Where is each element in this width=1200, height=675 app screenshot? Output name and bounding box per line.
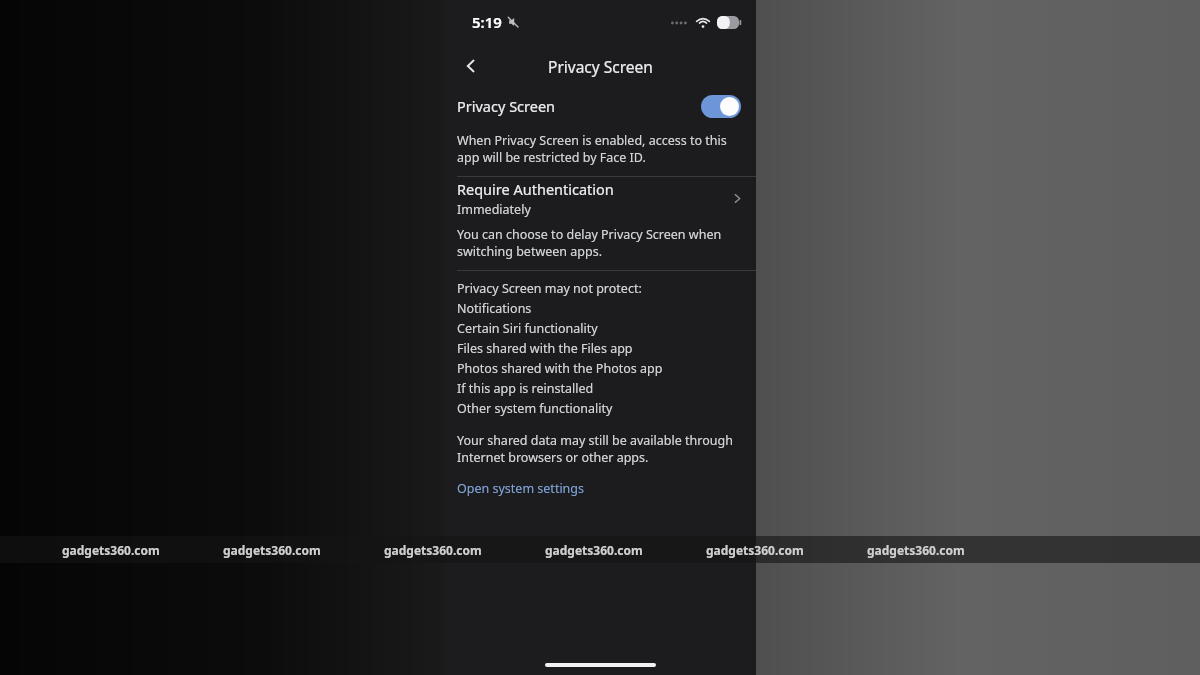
staticText: When Privacy Screen is enabled, access t… (457, 132, 743, 166)
staticText: Photos shared with the Photos app (457, 360, 663, 377)
staticText: 5:19 (472, 12, 502, 32)
staticText: gadgets360.com (223, 542, 321, 558)
button[interactable]: Back (450, 45, 492, 87)
staticText: gadgets360.com (545, 542, 643, 558)
staticText: gadgets360.com (706, 542, 804, 558)
staticText: Certain Siri functionality (457, 320, 598, 337)
staticText: Immediately (457, 201, 531, 218)
staticText: Other system functionality (457, 400, 613, 417)
staticText: Require Authentication (457, 179, 614, 199)
staticText: Privacy Screen (457, 96, 556, 116)
staticText: Privacy Screen may not protect: (457, 280, 642, 297)
button[interactable]: Require Authentication (444, 177, 756, 220)
staticText: gadgets360.com (867, 542, 965, 558)
staticText: Files shared with the Files app (457, 340, 633, 357)
staticText: You can choose to delay Privacy Screen w… (457, 226, 743, 260)
staticText: gadgets360.com (62, 542, 160, 558)
staticText: gadgets360.com (384, 542, 482, 558)
button[interactable]: Open system settings (457, 480, 585, 497)
staticText: Notifications (457, 300, 532, 317)
staticText: Privacy Screen (548, 56, 653, 77)
staticText: Open system settings (457, 480, 585, 497)
staticText: If this app is reinstalled (457, 380, 594, 397)
staticText: Your shared data may still be available … (457, 432, 743, 466)
button[interactable]: Privacy Screen (444, 88, 756, 124)
